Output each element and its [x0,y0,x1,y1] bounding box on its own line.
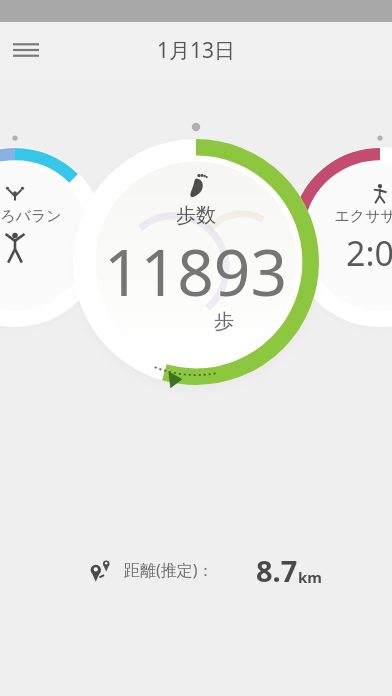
staticText: 8.7 [256,551,298,590]
staticText: 2:08 [346,230,392,276]
staticText: エクササイズ [334,207,392,226]
button[interactable]: エクササイズ [290,147,392,327]
staticText: 歩 [214,309,234,334]
staticText: 歩数 [176,203,216,228]
button[interactable]: Menu [4,28,48,72]
button[interactable]: 距離(推定)： [0,540,392,600]
staticText: 11893 [104,228,288,315]
staticText: 1月13日 [157,36,236,65]
staticText: こころバラン [0,207,62,226]
button[interactable]: こころバラン [0,147,105,327]
staticText: km [298,567,322,587]
staticText: 距離(推定)： [124,559,214,581]
button[interactable]: 歩数 [73,139,319,385]
